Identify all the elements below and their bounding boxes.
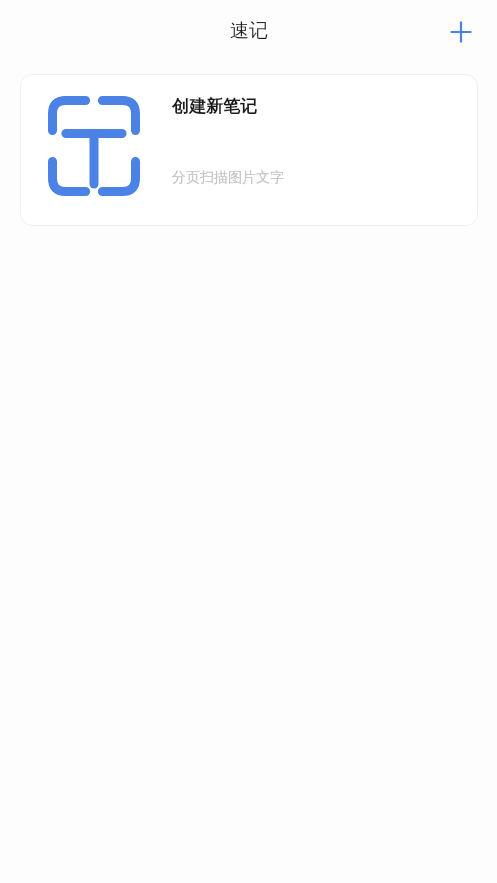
- button[interactable]: 创建新笔记: [20, 74, 478, 226]
- staticText: 速记: [230, 19, 268, 43]
- staticText: 创建新笔记: [172, 96, 257, 117]
- button[interactable]: Add note: [439, 10, 483, 54]
- staticText: 分页扫描图片文字: [172, 169, 284, 187]
